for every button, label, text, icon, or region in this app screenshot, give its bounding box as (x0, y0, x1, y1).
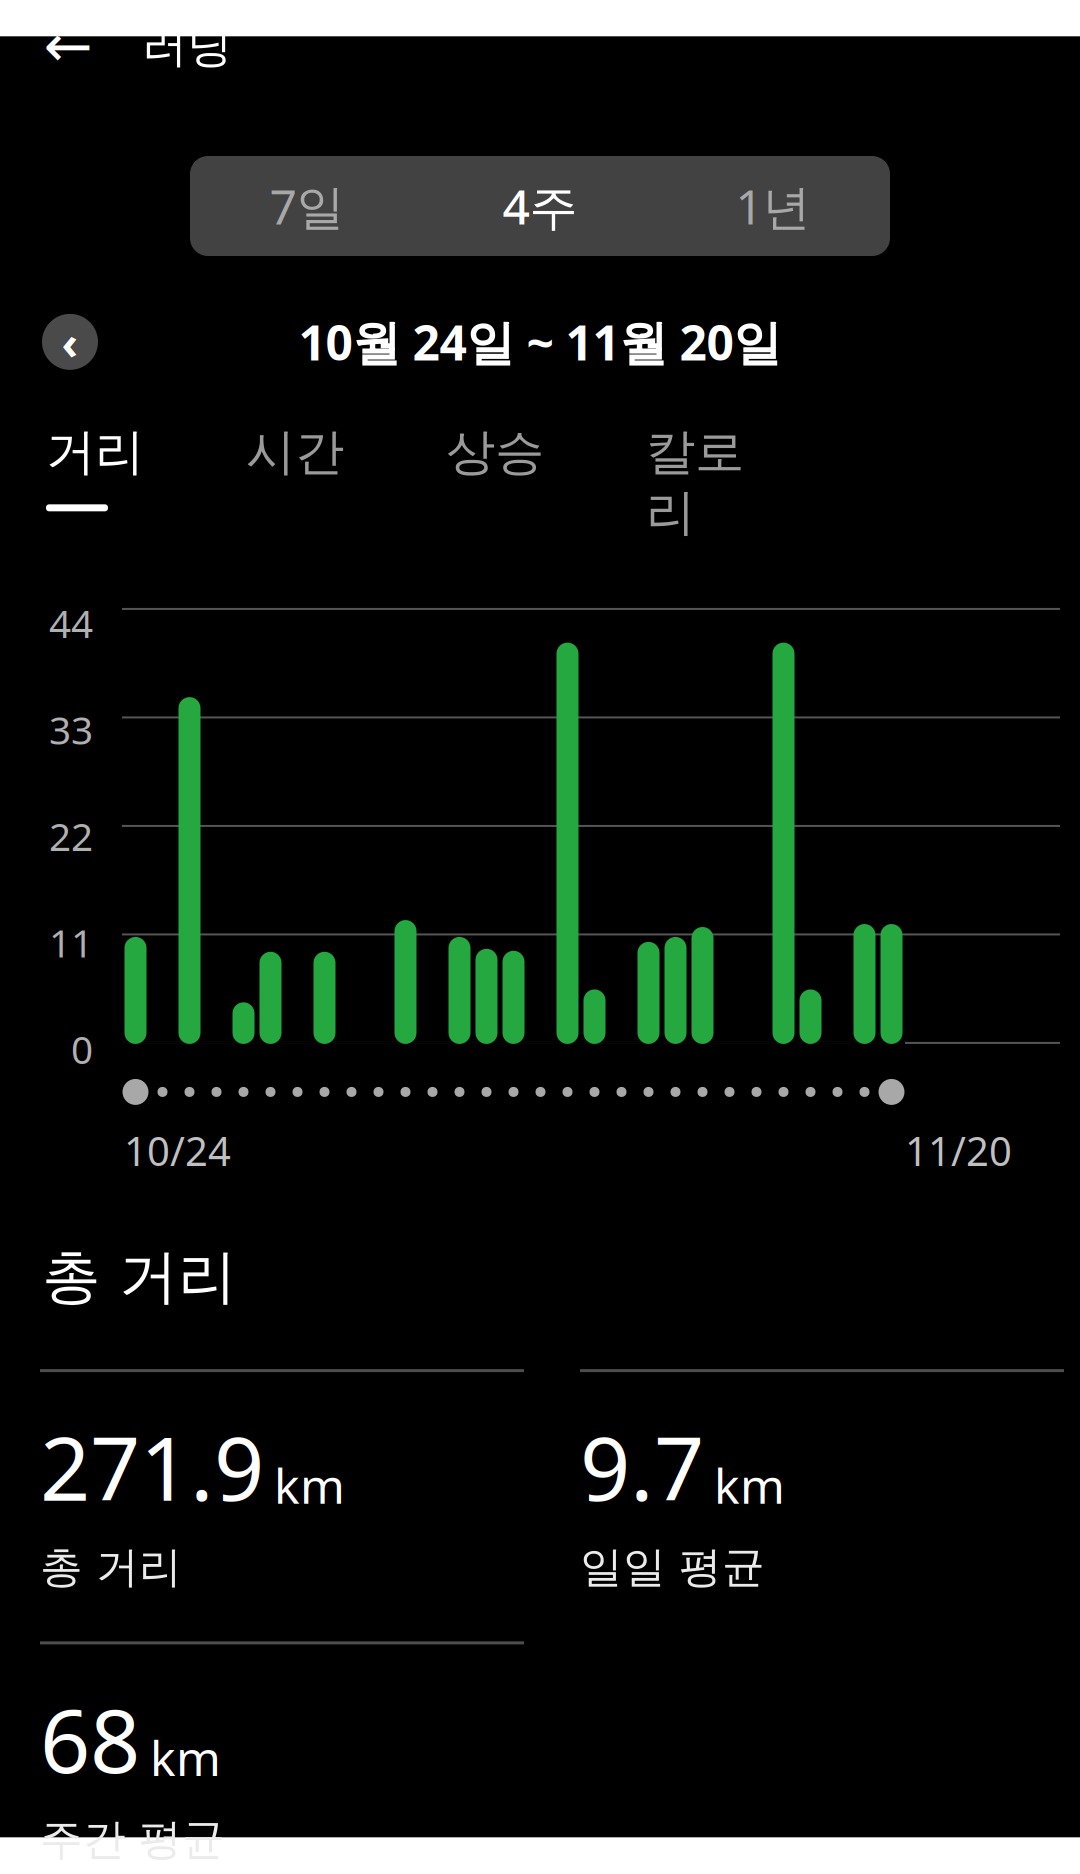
button[interactable]: Back (26, 4, 110, 88)
staticText: 271.9 (40, 1408, 264, 1525)
staticText: 10월 24일 ~ 11월 20일 (298, 310, 781, 374)
staticText: 주간 평균 (40, 1813, 225, 1866)
staticText: 68 (40, 1680, 140, 1797)
staticText: km (274, 1453, 345, 1517)
staticText: km (714, 1453, 785, 1517)
staticText: 7일 (269, 174, 344, 238)
staticText: 0 (71, 1023, 93, 1075)
button[interactable]: 1년 (656, 156, 889, 256)
button[interactable]: 7일 (190, 156, 423, 256)
button[interactable]: 상승 (446, 422, 646, 511)
staticText: 11/20 (905, 1124, 1012, 1177)
staticText: 거리 (46, 422, 144, 482)
staticText: 10/24 (124, 1124, 231, 1177)
staticText: 9.7 (580, 1408, 704, 1525)
staticText: 칼로리 (646, 422, 744, 543)
staticText: 러닝 (142, 18, 232, 74)
staticText: 시간 (246, 422, 344, 482)
button[interactable]: 4주 (423, 156, 656, 256)
staticText: 총 거리 (40, 1541, 182, 1593)
staticText: 22 (49, 810, 93, 862)
staticText: 4주 (502, 174, 577, 238)
staticText: km (150, 1725, 221, 1789)
staticText: 상승 (446, 422, 544, 482)
staticText: 33 (49, 704, 93, 755)
staticText: 일일 평균 (580, 1541, 765, 1593)
staticText: ‹ (61, 312, 78, 372)
button[interactable]: 칼로리 (646, 422, 846, 572)
button[interactable]: Previous period (42, 314, 98, 370)
staticText: 1년 (735, 174, 810, 238)
staticText: ← (43, 13, 92, 79)
staticText: 총 거리 (42, 1241, 237, 1313)
button[interactable]: 시간 (246, 422, 446, 511)
staticText: 44 (49, 597, 93, 649)
staticText: 11 (49, 917, 93, 968)
button[interactable]: 거리 (46, 422, 246, 511)
